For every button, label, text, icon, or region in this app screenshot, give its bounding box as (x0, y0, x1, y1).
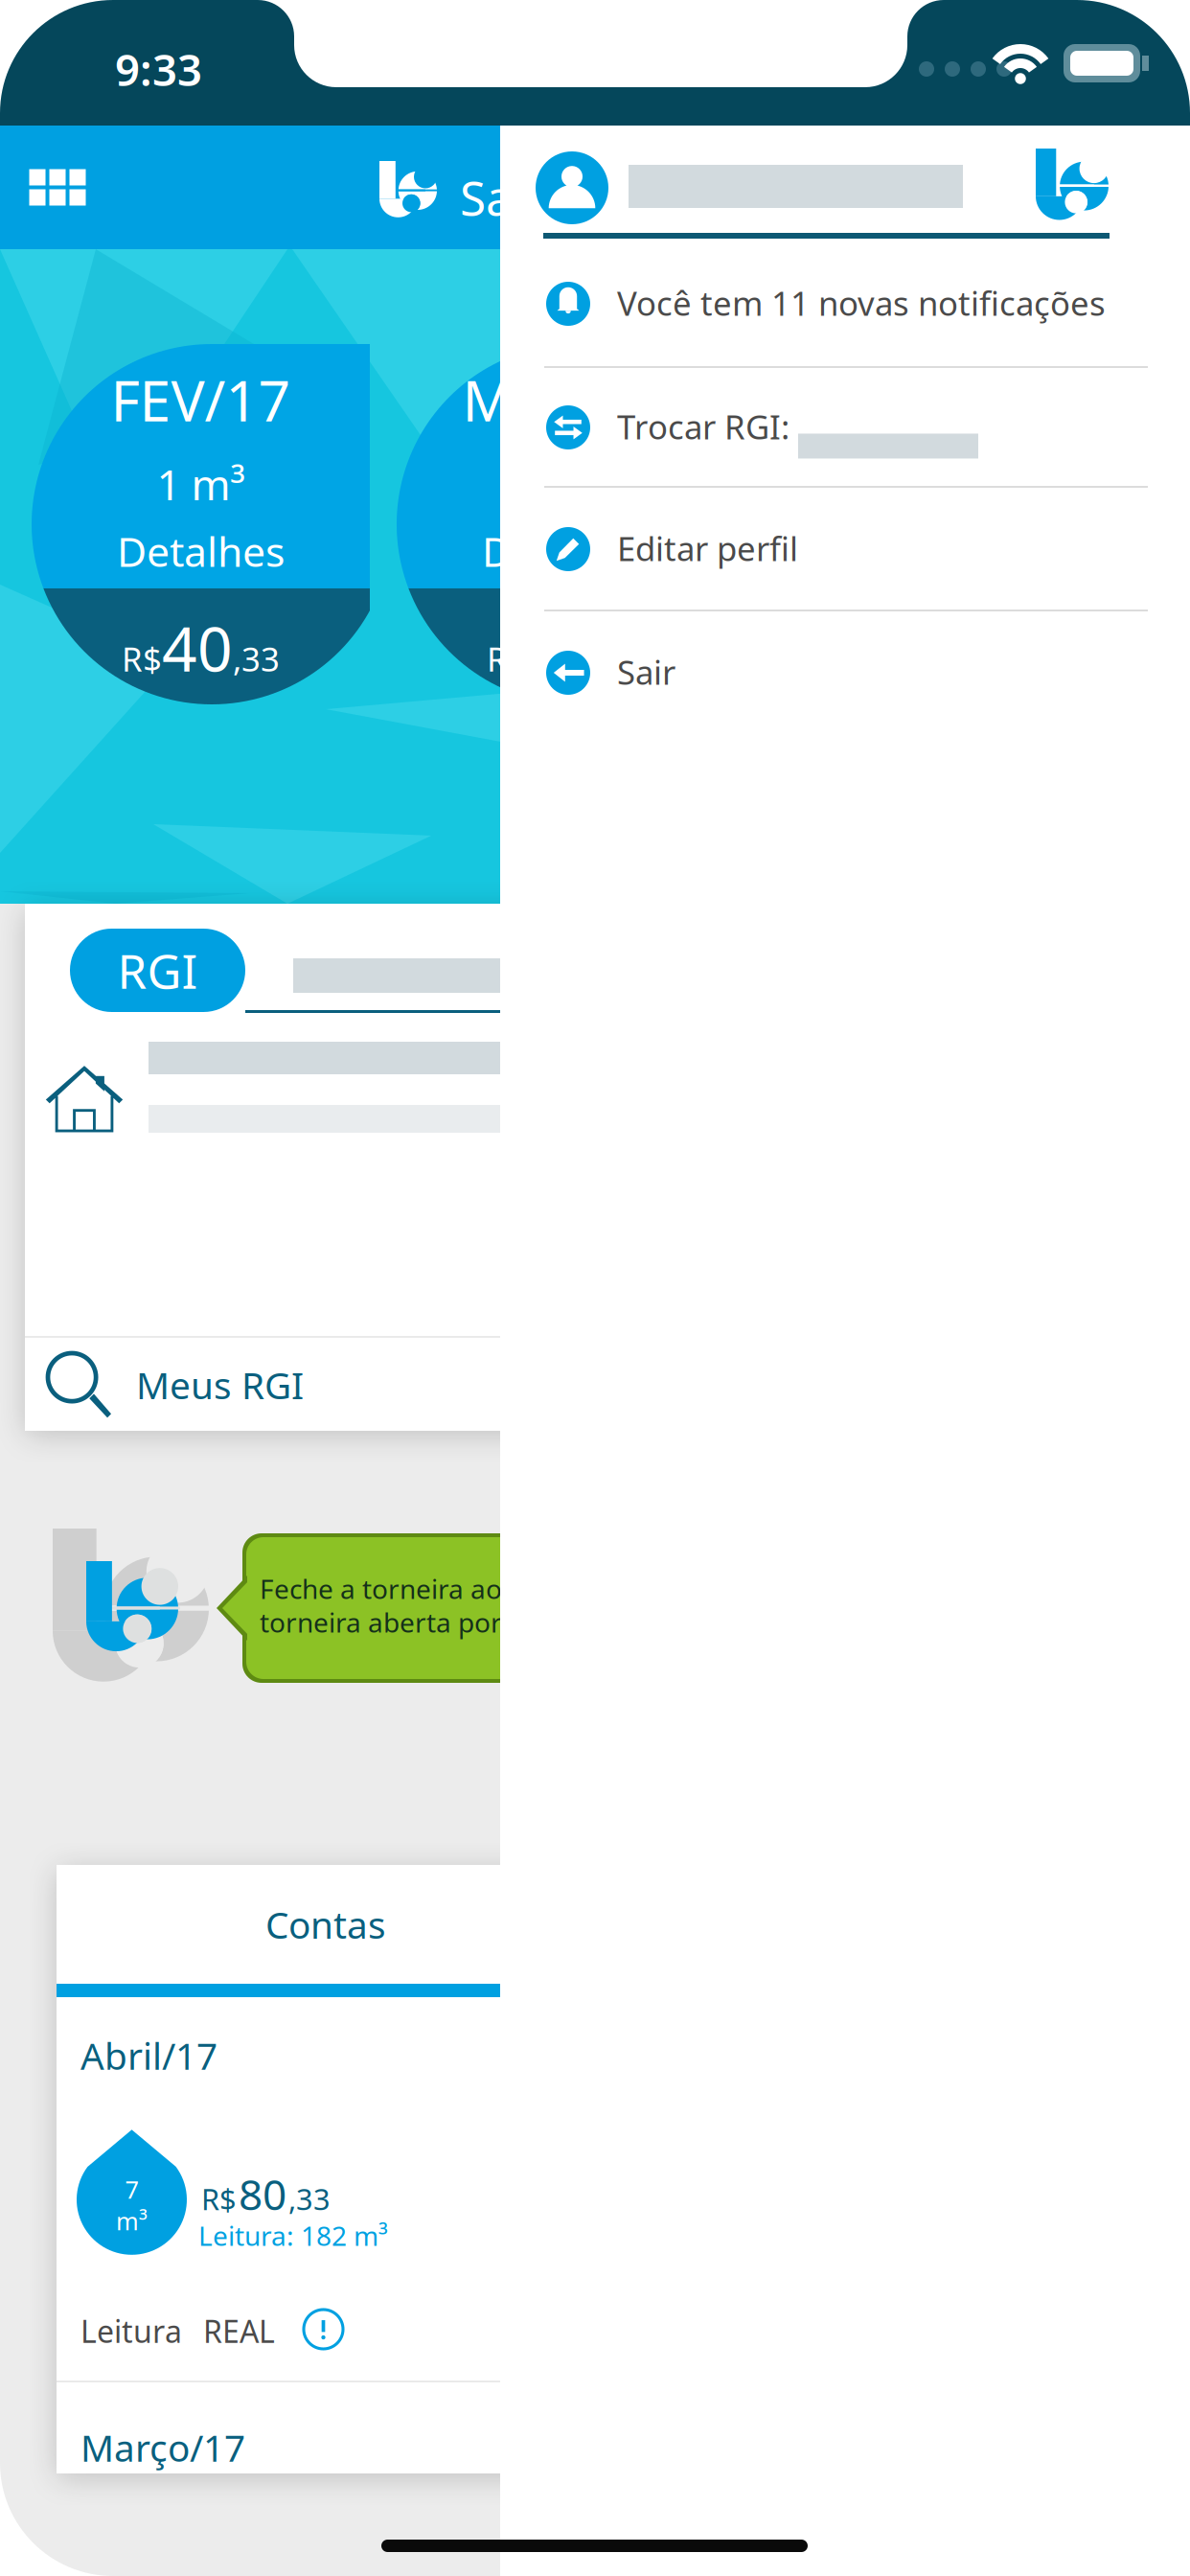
staticText: Feche a torneira ao escovar os dentes. U… (260, 1571, 806, 1606)
staticText: R$ (201, 2179, 237, 2218)
staticText: 4 m³ (522, 456, 610, 512)
staticText: 76 (527, 607, 598, 689)
staticText: torneira aberta por 5 minutos gasta 80 l… (260, 1604, 823, 1640)
staticText: REAL (203, 2311, 275, 2351)
staticText: Você tem 11 novas notificações (617, 281, 1106, 325)
staticText: Sabesp Mobile (460, 166, 785, 229)
staticText: MAR/17 (462, 362, 669, 437)
button[interactable]: Editar perfil (500, 488, 1190, 610)
staticText: Meus RGI (136, 1360, 304, 1409)
button[interactable]: Você tem 11 novas notificações (500, 242, 1190, 365)
staticText: 80 (239, 2166, 286, 2222)
staticText: Detalhes (117, 524, 285, 578)
button[interactable]: MAR/17 (397, 344, 735, 704)
staticText: Abril/17 (80, 2031, 217, 2080)
staticText: 9:33 (115, 40, 202, 98)
staticText: R$ (487, 637, 527, 681)
staticText: FEV/17 (111, 362, 291, 437)
staticText: 1 m³ (157, 456, 245, 512)
staticText: Editar perfil (617, 526, 798, 570)
staticText: Trocar RGI: (617, 404, 798, 448)
staticText: 7 (125, 2173, 138, 2205)
staticText: Leitura (80, 2311, 182, 2351)
staticText: ,33 (288, 2179, 331, 2218)
staticText: m³ (116, 2205, 148, 2237)
button[interactable]: Contas (57, 1865, 595, 1984)
button[interactable]: Sair (500, 611, 1190, 734)
button[interactable] (500, 126, 1190, 236)
button[interactable]: FEV/17 (32, 344, 370, 704)
staticText: Sair (617, 650, 675, 694)
staticText: RGI (117, 939, 198, 1002)
staticText: ,18 (598, 637, 645, 681)
staticText: ,33 (233, 637, 280, 681)
button[interactable]: Meus RGI (25, 1338, 1161, 1432)
staticText: Março/17 (80, 2423, 245, 2472)
staticText: Contas (265, 1900, 386, 1949)
staticText: R$ (122, 637, 162, 681)
button[interactable]: Trocar RGI: (500, 366, 1190, 489)
staticText: 40 (162, 607, 233, 689)
button[interactable]: Menu (0, 126, 115, 249)
staticText: Detalhes (482, 524, 650, 578)
staticText: Leitura: 182 m³ (198, 2218, 388, 2253)
